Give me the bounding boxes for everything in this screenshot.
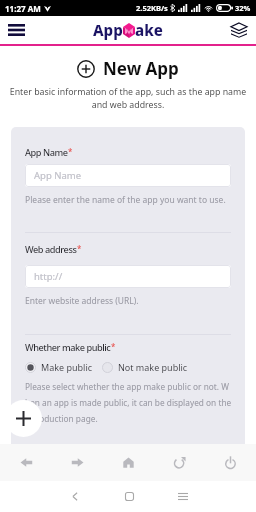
staticText: Enter website address (URL). xyxy=(25,295,139,307)
staticText: Please enter the name of the app you wan… xyxy=(25,194,226,206)
button[interactable]: Recents xyxy=(156,481,210,512)
button[interactable]: Back xyxy=(0,444,52,481)
button[interactable]: Forward xyxy=(52,444,103,481)
button[interactable]: http:// xyxy=(25,265,231,288)
staticText: App Name xyxy=(25,146,68,159)
staticText: App Name xyxy=(34,169,82,182)
staticText: App xyxy=(93,20,123,40)
button[interactable]: Menu xyxy=(4,18,28,42)
button[interactable]: Not make public xyxy=(102,361,188,373)
staticText: Please select whether the app make publi… xyxy=(25,381,231,424)
button[interactable]: Home xyxy=(102,481,156,512)
staticText: 32% xyxy=(235,3,251,13)
staticText: http:// xyxy=(34,270,63,283)
staticText: Web address xyxy=(25,243,77,256)
staticText: Enter basic information of the app, such… xyxy=(6,86,250,110)
button[interactable]: Home xyxy=(103,444,154,481)
button[interactable]: Add new app xyxy=(5,400,42,437)
button[interactable]: Make public xyxy=(25,361,93,373)
button[interactable]: Power xyxy=(205,444,256,481)
staticText: New App xyxy=(103,57,179,80)
staticText: Not make public xyxy=(118,361,188,373)
button[interactable]: Refresh xyxy=(154,444,205,481)
staticText: ake xyxy=(135,20,163,40)
staticText: * xyxy=(111,341,116,352)
staticText: * xyxy=(77,243,82,254)
staticText: Whether make public xyxy=(25,341,111,354)
button[interactable]: Back xyxy=(47,481,102,512)
staticText: * xyxy=(68,146,73,157)
button[interactable]: App Name xyxy=(25,164,231,187)
staticText: Make public xyxy=(41,361,93,373)
staticText: 11:27 AM xyxy=(5,3,41,14)
staticText: 2.52KB/s xyxy=(136,3,168,13)
button[interactable]: Layers xyxy=(227,18,251,42)
